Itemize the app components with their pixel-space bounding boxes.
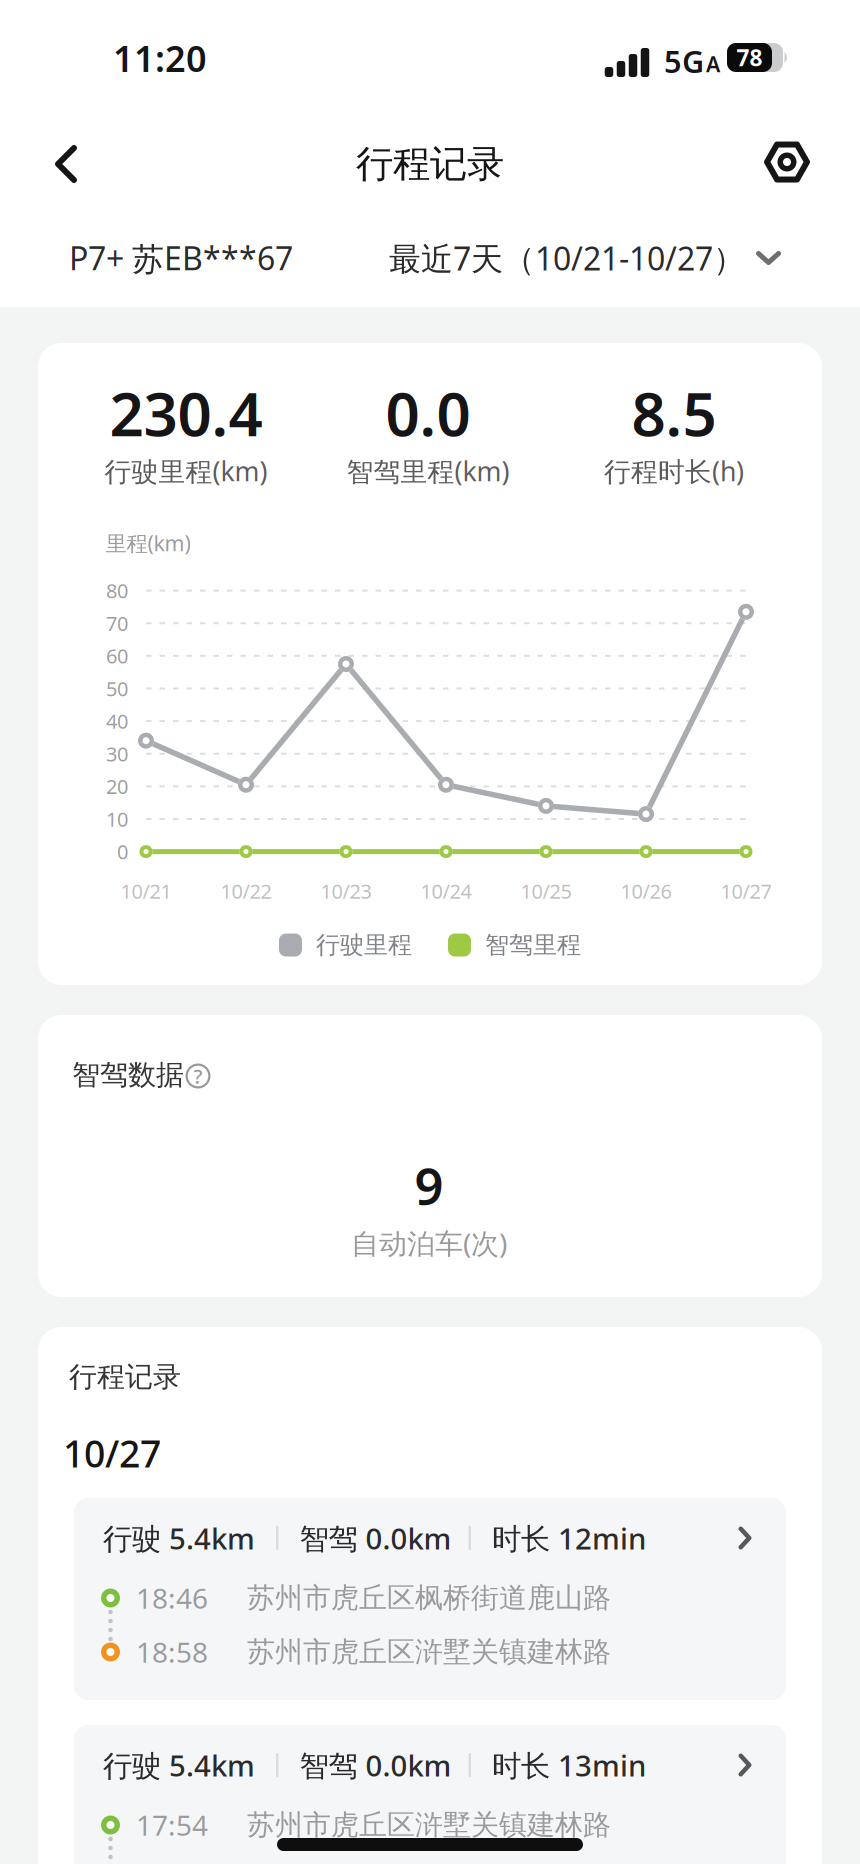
button[interactable]: 行驶 5.4km: [74, 1725, 786, 1864]
staticText: 自动泊车(次): [351, 1224, 507, 1262]
button[interactable]: 行驶 5.4km: [74, 1498, 786, 1700]
staticText: 30: [106, 740, 128, 767]
staticText: 10/23: [320, 878, 371, 904]
staticText: 苏州市虎丘区浒墅关镇建林路: [247, 1808, 611, 1842]
staticText: 时长 12min: [492, 1518, 646, 1557]
staticText: 11:20: [113, 34, 207, 82]
staticText: 40: [106, 708, 128, 734]
button[interactable]: Help: [185, 1063, 210, 1088]
staticText: 智驾数据: [72, 1058, 184, 1092]
staticText: 10/21: [120, 878, 171, 904]
staticText: 78: [736, 42, 762, 72]
staticText: 苏州市虎丘区浒墅关镇建林路: [247, 1635, 611, 1669]
staticText: 智驾里程(km): [346, 453, 509, 489]
staticText: 行驶里程(km): [104, 453, 267, 489]
staticText: 10/22: [220, 878, 271, 904]
staticText: 行驶里程: [316, 930, 412, 960]
staticText: 时长 13min: [492, 1745, 646, 1784]
button[interactable]: 最近7天（10/21-10/27）: [389, 237, 781, 279]
staticText: 10/27: [720, 878, 771, 904]
staticText: 18:58: [136, 1633, 208, 1671]
staticText: 70: [106, 610, 128, 636]
staticText: 0.0: [385, 373, 470, 453]
staticText: 5G: [664, 41, 704, 81]
staticText: 230.4: [109, 373, 262, 453]
staticText: A: [706, 50, 720, 78]
staticText: 苏州市虎丘区枫桥街道鹿山路: [247, 1581, 611, 1615]
staticText: 20: [106, 773, 128, 800]
staticText: 17:54: [136, 1806, 208, 1844]
staticText: ?: [193, 1063, 202, 1089]
staticText: 智驾 0.0km: [299, 1518, 451, 1557]
staticText: 智驾 0.0km: [299, 1745, 451, 1784]
staticText: 里程(km): [105, 529, 190, 557]
staticText: 最近7天（10/21-10/27）: [389, 237, 745, 279]
button[interactable]: P7+ 苏EB***67: [69, 237, 293, 279]
staticText: 50: [106, 675, 128, 702]
staticText: 行驶 5.4km: [103, 1518, 255, 1557]
staticText: P7+ 苏EB***67: [69, 237, 293, 279]
staticText: 行驶 5.4km: [103, 1745, 255, 1784]
staticText: 10/27: [63, 1428, 161, 1478]
staticText: 行程记录: [69, 1360, 181, 1394]
staticText: 9: [414, 1151, 443, 1219]
staticText: 10/24: [420, 878, 471, 904]
staticText: 10/25: [520, 878, 571, 904]
staticText: 智驾里程: [485, 930, 581, 960]
staticText: 行程记录: [356, 141, 504, 187]
staticText: 10: [106, 806, 128, 832]
staticText: 8.5: [631, 373, 716, 453]
button[interactable]: Back: [41, 131, 91, 197]
staticText: 0: [117, 838, 128, 865]
staticText: 80: [106, 577, 128, 604]
staticText: 行程时长(h): [604, 453, 744, 489]
button[interactable]: Settings: [755, 132, 819, 192]
staticText: 18:46: [136, 1579, 208, 1617]
staticText: 60: [106, 643, 128, 669]
staticText: 10/26: [620, 878, 671, 904]
